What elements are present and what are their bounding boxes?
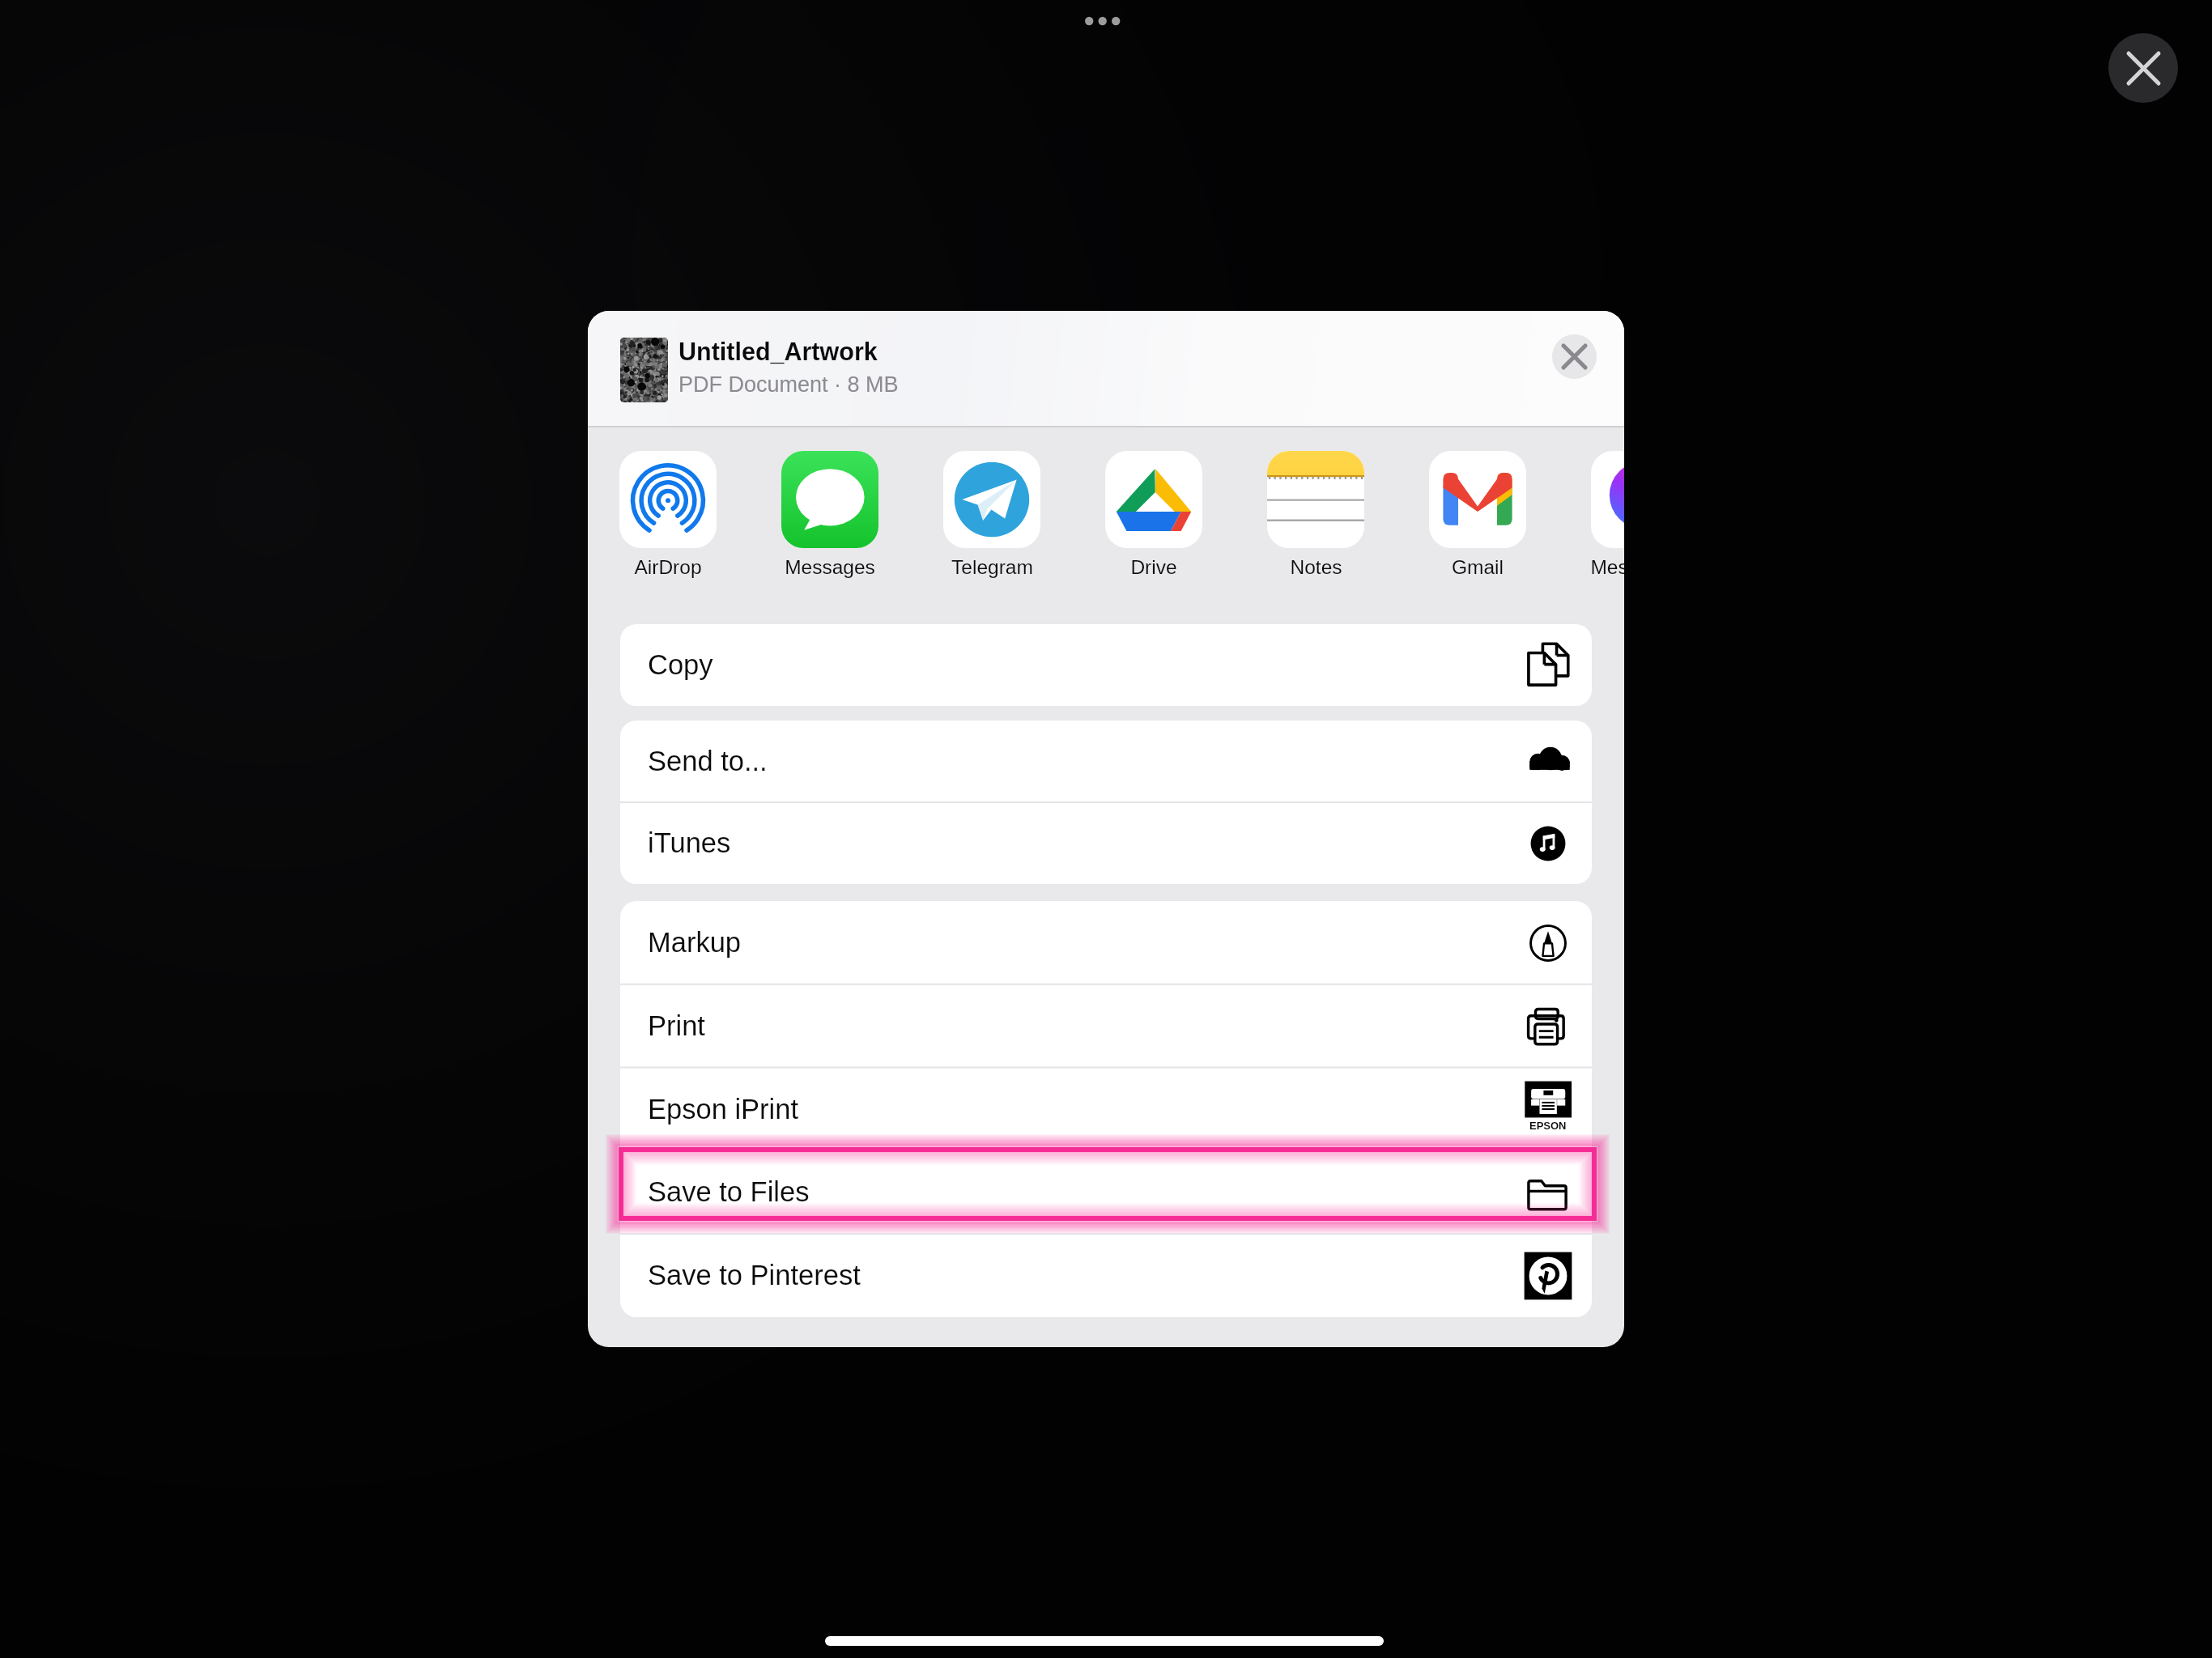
button[interactable]: Share with Notes (1267, 451, 1364, 574)
button[interactable]: Share with Messages (781, 451, 878, 574)
staticText: Messenger (1590, 556, 1624, 578)
button[interactable]: Share with Telegram (943, 451, 1040, 574)
button[interactable]: Markup (620, 901, 1592, 984)
button[interactable]: Print (620, 984, 1592, 1068)
button[interactable]: Share with Gmail (1429, 451, 1526, 574)
button[interactable]: iTunes (620, 802, 1592, 884)
staticText: Save to Files (648, 1176, 810, 1208)
staticText: Gmail (1452, 556, 1504, 578)
staticText: Untitled_Artwork (678, 338, 878, 365)
button[interactable]: Close (2108, 33, 2178, 103)
staticText: iTunes (648, 827, 731, 859)
staticText: Send to... (648, 746, 768, 777)
button[interactable]: Share with Drive (1105, 451, 1202, 574)
button[interactable]: Save to Pinterest (620, 1234, 1592, 1317)
button[interactable]: Save to Files (620, 1150, 1592, 1234)
staticText: PDF Document · 8 MB (678, 372, 899, 397)
staticText: EPSON (1529, 1120, 1567, 1132)
staticText: Print (648, 1010, 705, 1042)
staticText: Save to Pinterest (648, 1260, 861, 1291)
button[interactable]: Dismiss (1552, 334, 1597, 379)
staticText: Drive (1130, 556, 1177, 578)
staticText: Copy (648, 649, 713, 681)
staticText: Messages (785, 556, 875, 578)
button[interactable]: Send to... (620, 721, 1592, 802)
button[interactable]: Share with Messenger (1591, 451, 1624, 574)
button[interactable]: Epson iPrint (620, 1068, 1592, 1151)
staticText: Epson iPrint (648, 1094, 799, 1125)
staticText: Notes (1290, 556, 1342, 578)
staticText: Telegram (951, 556, 1033, 578)
staticText: Markup (648, 927, 742, 959)
button[interactable]: Share with AirDrop (619, 451, 717, 574)
button[interactable]: Copy (620, 624, 1592, 706)
staticText: AirDrop (634, 556, 702, 578)
